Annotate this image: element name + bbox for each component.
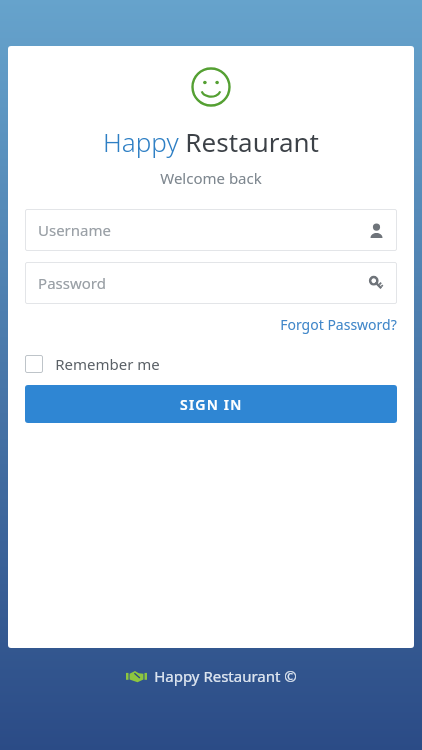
staticText: Username bbox=[38, 220, 111, 240]
staticText: Password bbox=[38, 273, 106, 293]
button[interactable]: SIGN IN bbox=[25, 385, 397, 423]
staticText: Happy Restaurant © bbox=[154, 666, 297, 686]
button[interactable]: Password bbox=[25, 262, 397, 304]
button[interactable]: Username bbox=[25, 209, 397, 251]
staticText: Forgot Password? bbox=[280, 315, 397, 334]
staticText: Happy Restaurant bbox=[103, 124, 319, 159]
staticText: SIGN IN bbox=[180, 395, 243, 414]
button[interactable]: Forgot Password? bbox=[280, 315, 397, 334]
staticText: Welcome back bbox=[160, 168, 262, 188]
button[interactable]: Remember me bbox=[25, 354, 160, 374]
staticText: Remember me bbox=[55, 354, 160, 374]
